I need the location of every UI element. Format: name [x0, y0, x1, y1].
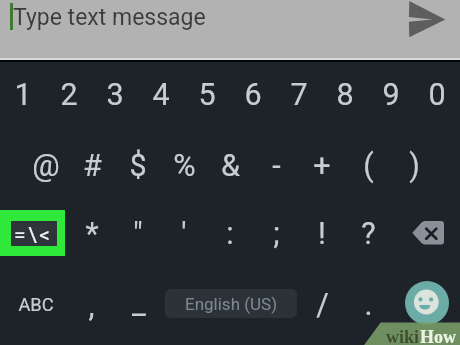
staticText: 7	[290, 77, 308, 113]
staticText: &	[221, 148, 240, 184]
staticText: :	[226, 216, 234, 252]
button[interactable]: .	[345, 272, 391, 338]
staticText: "	[133, 216, 143, 252]
staticText: 0	[428, 77, 446, 113]
staticText: #	[83, 148, 102, 184]
button[interactable]: 6	[230, 62, 276, 128]
button[interactable]: $	[115, 133, 161, 199]
button[interactable]: '	[161, 201, 207, 267]
button[interactable]: 9	[368, 62, 414, 128]
staticText: How	[420, 327, 456, 345]
staticText: '	[181, 216, 187, 252]
button[interactable]: !	[299, 201, 345, 267]
button[interactable]: 3	[92, 62, 138, 128]
staticText: %	[173, 148, 196, 184]
button[interactable]: Send	[401, 0, 453, 44]
button[interactable]: )	[391, 133, 437, 199]
staticText: ,	[88, 288, 95, 324]
staticText: ABC	[18, 294, 54, 315]
staticText: _	[132, 286, 146, 322]
staticText: =\<	[14, 223, 53, 248]
button[interactable]: 0	[414, 62, 460, 128]
button[interactable]: *	[69, 201, 115, 267]
staticText: @	[32, 148, 60, 184]
button[interactable]: @	[23, 133, 69, 199]
button[interactable]: +	[299, 133, 345, 199]
button[interactable]: 5	[184, 62, 230, 128]
staticText: ?	[361, 216, 376, 252]
staticText: wiki	[386, 327, 420, 345]
button[interactable]: &	[207, 133, 253, 199]
button[interactable]: English (US)	[165, 289, 297, 318]
button[interactable]: 7	[276, 62, 322, 128]
button[interactable]: Backspace	[405, 210, 455, 256]
staticText: 8	[336, 77, 354, 113]
button[interactable]: 2	[46, 62, 92, 128]
button[interactable]: -	[253, 133, 299, 199]
button[interactable]: ,	[68, 273, 114, 339]
staticText: +	[313, 148, 331, 184]
button[interactable]: ABC	[6, 271, 66, 337]
button[interactable]: :	[207, 201, 253, 267]
button[interactable]: ;	[253, 201, 299, 267]
staticText: 9	[382, 77, 400, 113]
button[interactable]: 1	[0, 62, 46, 128]
button[interactable]: (	[345, 133, 391, 199]
staticText: -	[272, 148, 281, 184]
staticText: .	[364, 287, 373, 323]
button[interactable]: 8	[322, 62, 368, 128]
staticText: 6	[244, 77, 262, 113]
staticText: ;	[273, 216, 280, 252]
button[interactable]: =\<	[0, 210, 65, 256]
staticText: $	[129, 148, 147, 184]
button[interactable]: Emoji	[405, 281, 449, 325]
button[interactable]: _	[116, 271, 162, 337]
staticText: !	[318, 216, 326, 252]
staticText: 2	[60, 77, 78, 113]
button[interactable]: ?	[345, 201, 391, 267]
button[interactable]	[0, 0, 460, 58]
staticText: 4	[152, 77, 170, 113]
staticText: Type text message	[13, 4, 206, 31]
button[interactable]: #	[69, 133, 115, 199]
staticText: )	[409, 148, 420, 184]
button[interactable]: /	[299, 272, 345, 338]
button[interactable]: "	[115, 201, 161, 267]
staticText: 5	[198, 77, 216, 113]
button[interactable]: %	[161, 133, 207, 199]
staticText: *	[85, 216, 99, 252]
button[interactable]: 4	[138, 62, 184, 128]
staticText: (	[363, 148, 374, 184]
staticText: English (US)	[185, 294, 278, 314]
staticText: 1	[14, 77, 32, 113]
staticText: /	[316, 287, 329, 323]
staticText: 3	[106, 77, 124, 113]
